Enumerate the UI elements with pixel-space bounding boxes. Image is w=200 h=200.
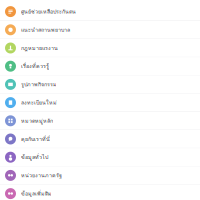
staticText: เรื่องที่ควรรู้ [21, 62, 49, 70]
staticText: รูปภาพกิจกรรม [21, 80, 57, 89]
staticText: หมวดหมู่หลัก [21, 117, 53, 125]
button[interactable]: คุยกับเราที่นี่ [0, 130, 200, 148]
staticText: คุยกับเราที่นี่ [21, 135, 50, 143]
staticText: กฎหมายแรงาน [21, 44, 58, 52]
button[interactable]: กฎหมายแรงาน [0, 39, 200, 57]
staticText: หน่วยงานภาครัฐ [21, 171, 62, 180]
button[interactable]: หน่วยงานภาครัฐ [0, 167, 200, 184]
button[interactable]: เรื่องที่ควรรู้ [0, 57, 200, 75]
staticText: ศูนย์ช่วยเหลือประกันตน [21, 7, 76, 16]
staticText: ข้อมูลเพิ่มติม [21, 189, 52, 198]
button[interactable]: รูปภาพกิจกรรม [0, 76, 200, 93]
button[interactable]: หมวดหมู่หลัก [0, 112, 200, 130]
staticText: แนะนำสถานพยาบาล [21, 26, 70, 34]
button[interactable]: ข้อมูลเพิ่มติม [0, 185, 200, 200]
button[interactable]: ข้อมูลทั่วไป [0, 148, 200, 166]
staticText: ลงทะเบียนใหม่ [21, 98, 57, 107]
staticText: ข้อมูลทั่วไป [21, 153, 48, 161]
button[interactable]: ศูนย์ช่วยเหลือประกันตน [0, 3, 200, 20]
button[interactable]: แนะนำสถานพยาบาล [0, 21, 200, 39]
button[interactable]: ลงทะเบียนใหม่ [0, 94, 200, 111]
